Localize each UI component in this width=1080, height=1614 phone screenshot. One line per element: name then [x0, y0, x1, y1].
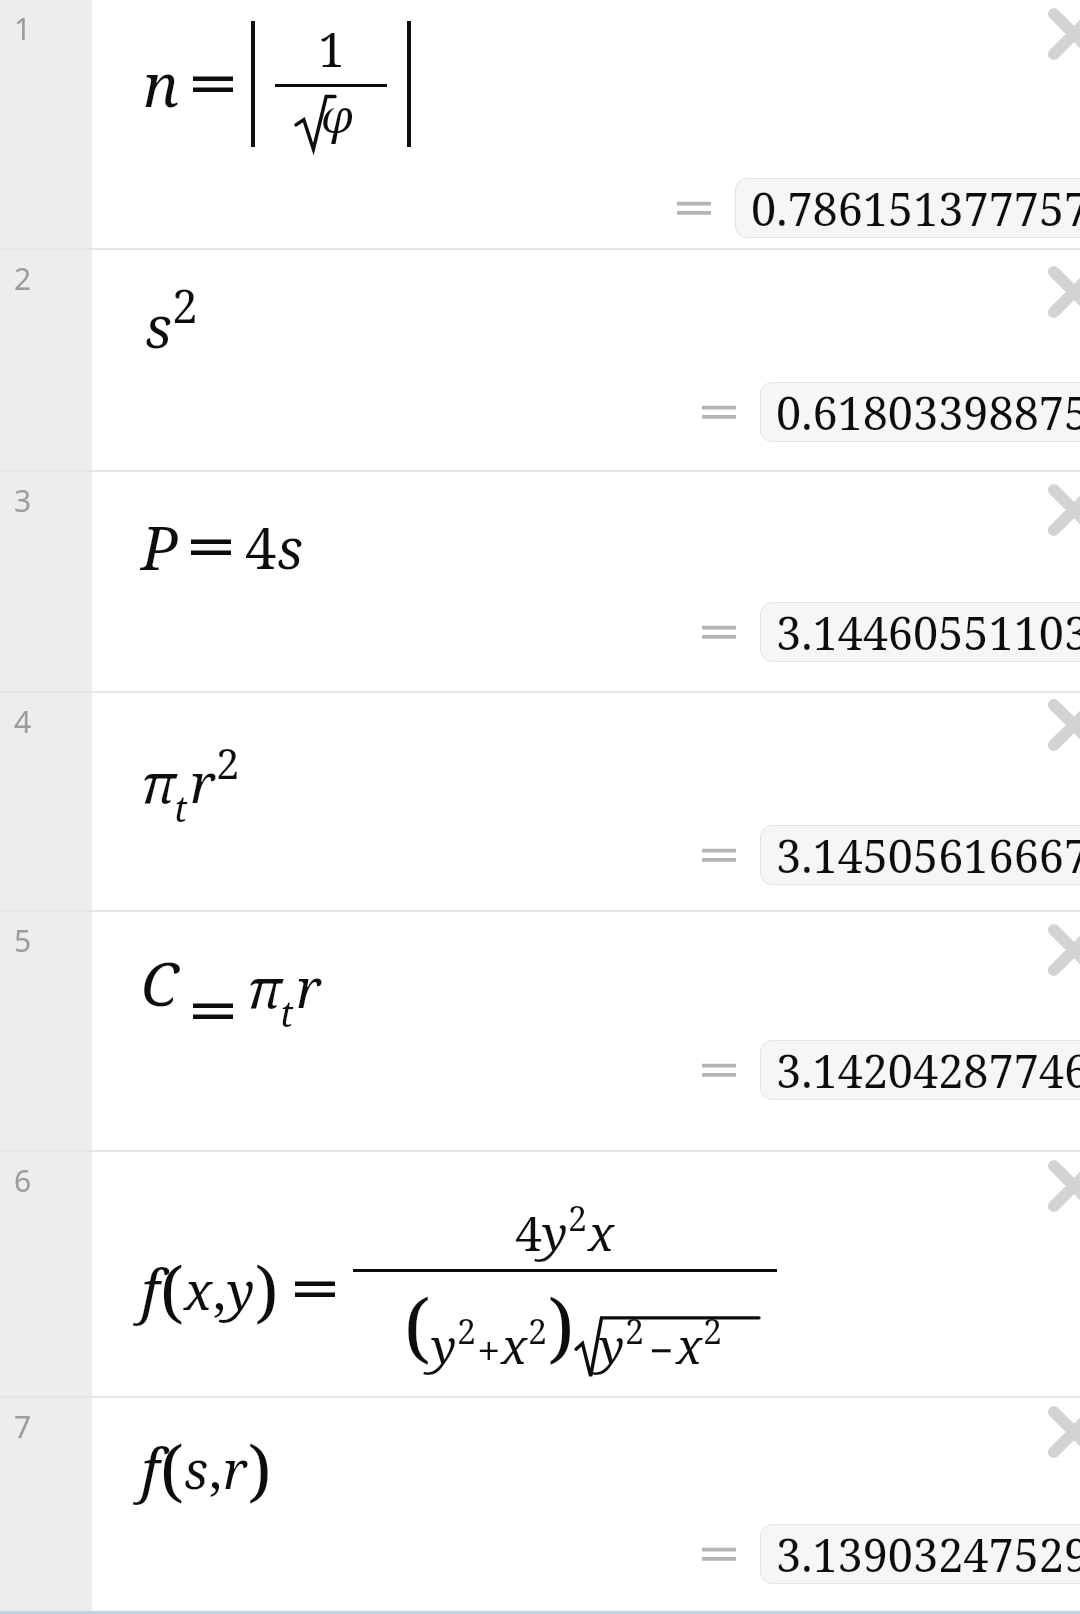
staticText: 6: [14, 1160, 32, 1201]
staticText: y: [542, 1200, 568, 1265]
button[interactable]: Delete expression: [1034, 252, 1080, 332]
staticText: 5: [14, 920, 32, 961]
button[interactable]: Delete expression: [1034, 1146, 1080, 1226]
staticText: x: [184, 1254, 213, 1325]
staticText: x: [676, 1313, 703, 1378]
staticText: 2: [457, 1308, 477, 1354]
staticText: 4: [14, 701, 32, 742]
button[interactable]: 4: [0, 693, 1080, 910]
staticText: ): [255, 1243, 279, 1336]
staticText: f: [141, 1250, 160, 1329]
staticText: ): [548, 1274, 575, 1378]
staticText: φ: [321, 84, 354, 147]
staticText: t: [174, 784, 188, 833]
staticText: 3: [14, 480, 32, 521]
staticText: y: [599, 1313, 625, 1378]
staticText: r: [223, 1433, 248, 1504]
staticText: 4: [515, 1200, 542, 1265]
staticText: π: [141, 745, 176, 819]
staticText: s: [145, 286, 172, 365]
button[interactable]: 3.14460551103: [760, 602, 1080, 662]
button[interactable]: Delete expression: [1034, 685, 1080, 765]
button[interactable]: 7: [0, 1398, 1080, 1612]
staticText: r: [296, 950, 322, 1024]
staticText: 0.61803398875: [776, 382, 1080, 442]
staticText: s: [184, 1433, 209, 1504]
staticText: −: [649, 1321, 674, 1378]
button[interactable]: 3.14505616667: [760, 825, 1080, 885]
staticText: C: [141, 942, 179, 1024]
staticText: 3.14460551103: [776, 602, 1080, 662]
staticText: 7: [14, 1406, 32, 1447]
staticText: (: [404, 1274, 431, 1378]
button[interactable]: Delete expression: [1034, 910, 1080, 990]
staticText: x: [588, 1200, 615, 1265]
staticText: 2: [216, 734, 240, 791]
staticText: 3.13903247529: [776, 1524, 1080, 1584]
button[interactable]: Delete expression: [1034, 0, 1080, 74]
button[interactable]: 2: [0, 250, 1080, 470]
button[interactable]: 3.14204287746: [760, 1040, 1080, 1100]
staticText: n: [143, 43, 179, 125]
staticText: 1: [14, 8, 32, 49]
staticText: (: [160, 1243, 184, 1336]
staticText: P: [141, 506, 179, 588]
button[interactable]: Delete expression: [1034, 470, 1080, 550]
button[interactable]: 6: [0, 1152, 1080, 1396]
button[interactable]: 3.13903247529: [760, 1524, 1080, 1584]
staticText: r: [190, 745, 216, 819]
staticText: π: [247, 950, 282, 1024]
button[interactable]: 5: [0, 912, 1080, 1150]
staticText: +: [477, 1321, 501, 1378]
staticText: ,: [213, 1254, 227, 1325]
staticText: 2: [703, 1308, 723, 1354]
button[interactable]: Delete expression: [1034, 1392, 1080, 1472]
staticText: 2: [568, 1195, 588, 1241]
staticText: 4: [245, 509, 277, 585]
staticText: 1: [318, 16, 345, 81]
staticText: f: [141, 1429, 160, 1508]
staticText: y: [431, 1313, 457, 1378]
staticText: s: [277, 509, 303, 585]
button[interactable]: 3: [0, 472, 1080, 691]
staticText: 3.14505616667: [776, 825, 1080, 885]
button[interactable]: 1: [0, 0, 1080, 248]
staticText: ): [248, 1422, 272, 1515]
staticText: 2: [14, 258, 32, 299]
staticText: y: [227, 1254, 255, 1325]
staticText: 2: [172, 274, 198, 337]
staticText: 3.14204287746: [776, 1040, 1080, 1100]
staticText: 2: [625, 1308, 645, 1354]
button[interactable]: 0.786151377757: [735, 178, 1080, 238]
staticText: (: [160, 1422, 184, 1515]
staticText: 0.786151377757: [751, 178, 1080, 238]
staticText: 2: [528, 1308, 548, 1354]
staticText: ,: [209, 1433, 223, 1504]
staticText: x: [501, 1313, 528, 1378]
staticText: t: [280, 989, 294, 1038]
button[interactable]: 0.61803398875: [760, 382, 1080, 442]
